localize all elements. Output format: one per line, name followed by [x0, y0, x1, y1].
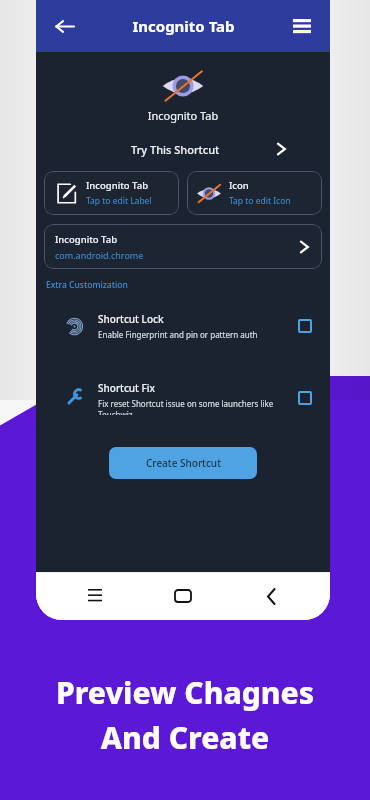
staticText: Try This Shortcut	[131, 142, 220, 157]
button[interactable]: Back	[42, 4, 86, 48]
staticText: Incognito Tab	[36, 108, 330, 123]
staticText: Tap to edit Label	[86, 195, 152, 207]
staticText: Shortcut Lock	[98, 312, 164, 326]
button[interactable]: Create Shortcut	[109, 447, 257, 479]
button[interactable]: Recents	[78, 579, 112, 613]
button[interactable]: Shortcut Lock	[46, 309, 320, 343]
staticText: Icon	[229, 179, 249, 192]
button[interactable]: Shortcut Fix	[298, 391, 312, 405]
staticText: Preview Chagnes	[0, 672, 370, 713]
staticText: Shortcut Fix	[98, 381, 155, 395]
staticText: Enable Fingerprint and pin or pattern au…	[98, 329, 258, 340]
staticText: Fix reset Shortcut issue on some launche…	[98, 398, 298, 415]
staticText: Incognito Tab	[86, 179, 149, 192]
staticText: And Create	[0, 717, 370, 758]
staticText: com.android.chrome	[55, 249, 144, 261]
staticText: Incognito Tab	[132, 16, 235, 36]
button[interactable]: Home	[166, 579, 200, 613]
button[interactable]: Shortcut Lock	[298, 319, 312, 333]
button[interactable]: Incognito Tab	[44, 171, 179, 215]
button[interactable]: Incognito Tab	[44, 224, 322, 269]
button[interactable]: Try This Shortcut	[78, 135, 288, 163]
staticText: Tap to edit Icon	[229, 195, 291, 207]
button[interactable]: Icon	[187, 171, 322, 215]
staticText: Create Shortcut	[146, 456, 221, 470]
button[interactable]: Back	[254, 579, 288, 613]
button[interactable]: Menu	[280, 4, 324, 48]
staticText: Extra Customization	[46, 279, 128, 291]
button[interactable]: Shortcut Fix	[46, 381, 320, 415]
staticText: Incognito Tab	[55, 233, 118, 246]
